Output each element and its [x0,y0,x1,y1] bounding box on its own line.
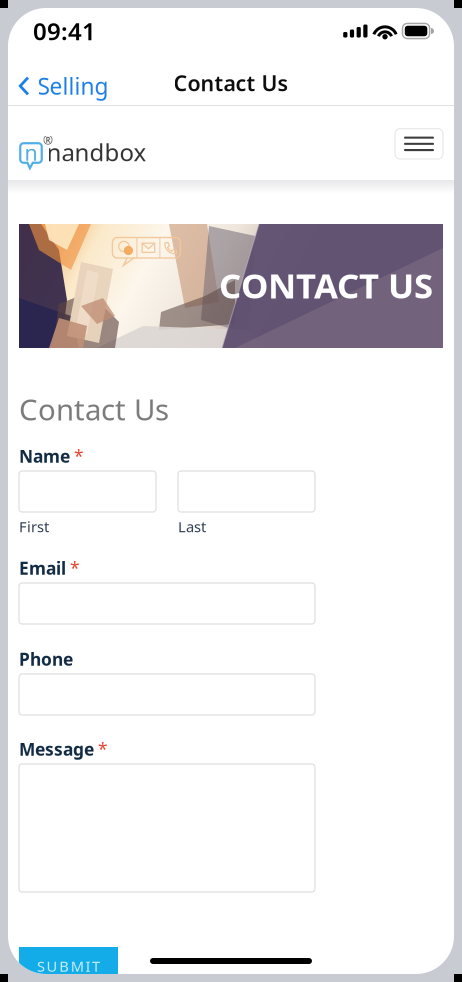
staticText: First [19,517,49,536]
staticText: Contact Us [19,389,169,428]
staticText: ® [43,132,53,148]
staticText: SUBMIT [37,956,100,976]
staticText: Email [19,556,66,579]
staticText: * [70,556,80,579]
staticText: CONTACT US [219,262,433,308]
staticText: Contact Us [173,69,288,97]
staticText: Phone [19,647,73,670]
staticText: * [98,737,108,760]
button[interactable]: nandbox home [19,135,199,173]
staticText: nandbox [46,136,146,168]
button[interactable]: Menu [395,129,443,159]
staticText: Name [19,444,70,467]
button[interactable]: SUBMIT [19,947,118,982]
staticText: Last [178,517,206,536]
staticText: n [24,138,37,167]
staticText: * [74,444,84,467]
staticText: Message [19,737,94,760]
staticText: Selling [37,71,108,101]
button[interactable]: Selling [18,67,168,105]
staticText: 09:41 [33,15,96,47]
